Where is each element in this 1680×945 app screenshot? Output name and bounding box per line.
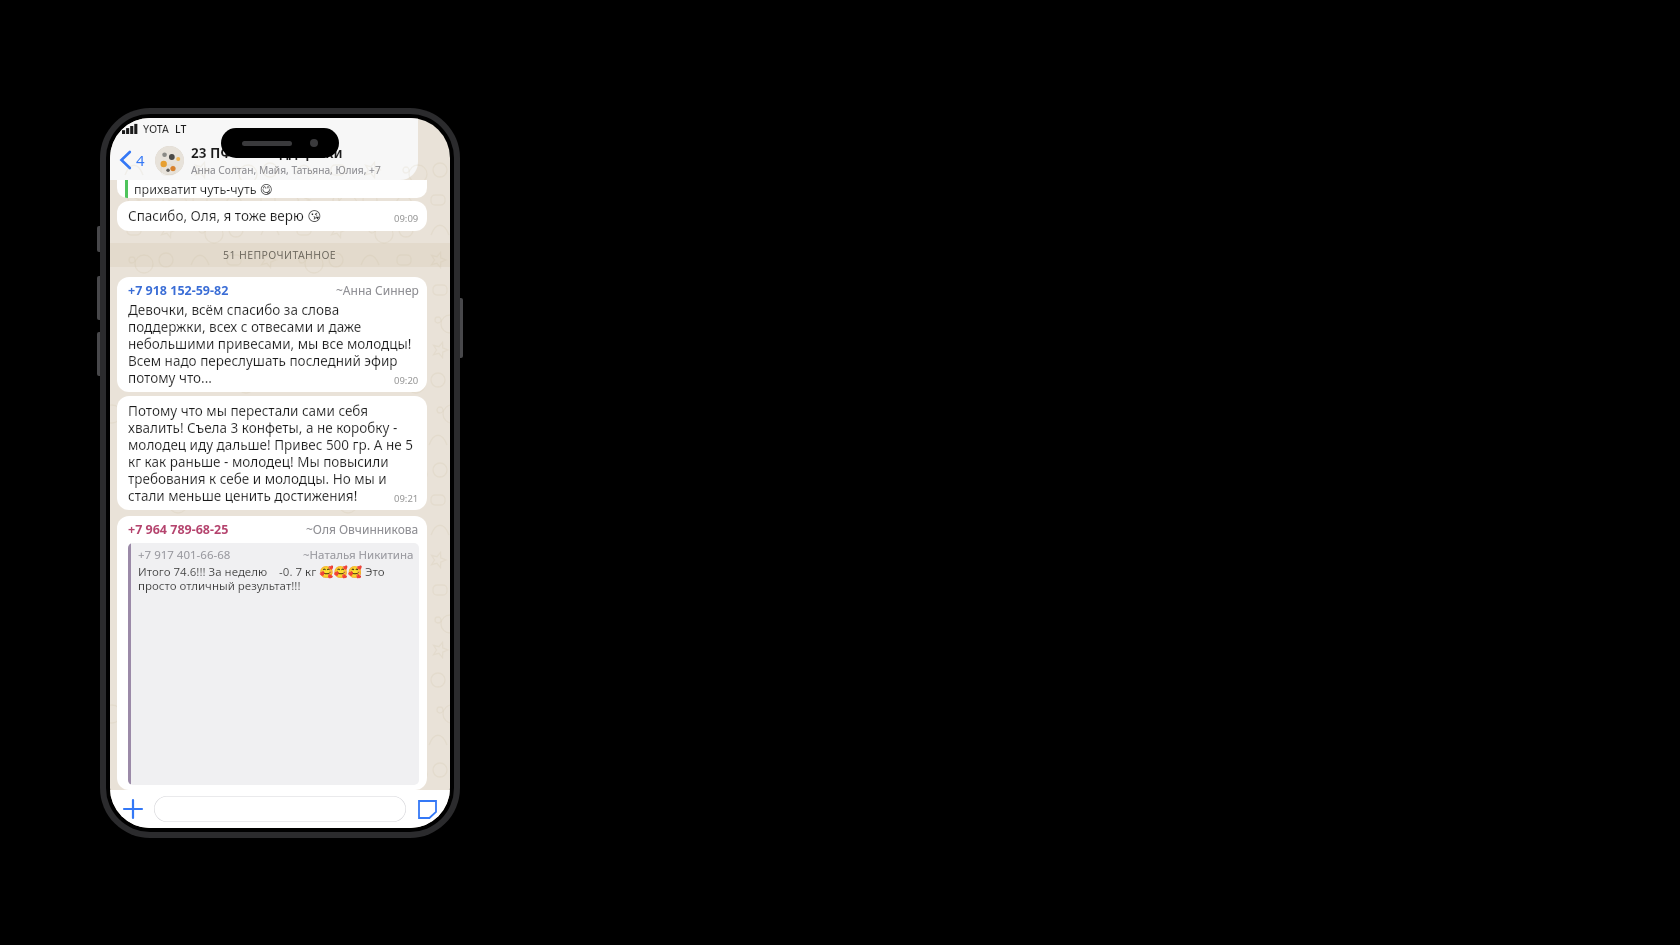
button[interactable]: Chat avatar <box>155 146 184 175</box>
staticText: +7 917 401-66-68 <box>138 547 231 563</box>
staticText: ~Анна Синнер <box>336 282 419 298</box>
staticText: прихватит чуть-чуть 😋 <box>134 181 273 198</box>
staticText: +7 964 789-68-25 <box>128 521 229 538</box>
staticText: Потому что мы перестали сами себя хвалит… <box>128 402 419 505</box>
staticText: +7 918 152-59-82 <box>128 282 229 299</box>
staticText: 23 ПФ чат поддержки <box>191 144 343 162</box>
button[interactable]: Back <box>118 150 147 170</box>
staticText: LT <box>175 122 187 136</box>
button[interactable]: Потому что мы перестали сами себя хвалит… <box>117 396 427 510</box>
staticText: 09:21 <box>394 492 419 505</box>
staticText: ~Наталья Никитина <box>303 547 414 563</box>
staticText: Спасибо, Оля, я тоже верю 😘 <box>128 207 322 225</box>
button[interactable]: +7 964 789-68-25 <box>117 516 427 790</box>
staticText: ~Оля Овчинникова <box>306 521 419 537</box>
button[interactable]: +7 918 152-59-82 <box>117 277 427 392</box>
staticText: 51 НЕПРОЧИТАННОЕ <box>223 248 337 262</box>
button[interactable]: Спасибо, Оля, я тоже верю 😘 <box>117 201 427 231</box>
staticText: YOTA <box>143 122 169 136</box>
staticText: 09:09 <box>394 212 419 225</box>
staticText: Девочки, всём спасибо за слова поддержки… <box>128 301 419 387</box>
staticText: 4 <box>136 150 145 170</box>
staticText: Итого 74.6!!! За неделю -0. 7 кг 🥰🥰🥰 Это… <box>138 564 414 594</box>
button[interactable]: Attach <box>120 796 146 822</box>
button[interactable] <box>154 796 406 822</box>
button[interactable]: Stickers <box>414 796 440 822</box>
staticText: 09:20 <box>394 374 419 387</box>
staticText: Анна Солтан, Майя, Татьяна, Юлия, +7 <box>191 163 381 177</box>
